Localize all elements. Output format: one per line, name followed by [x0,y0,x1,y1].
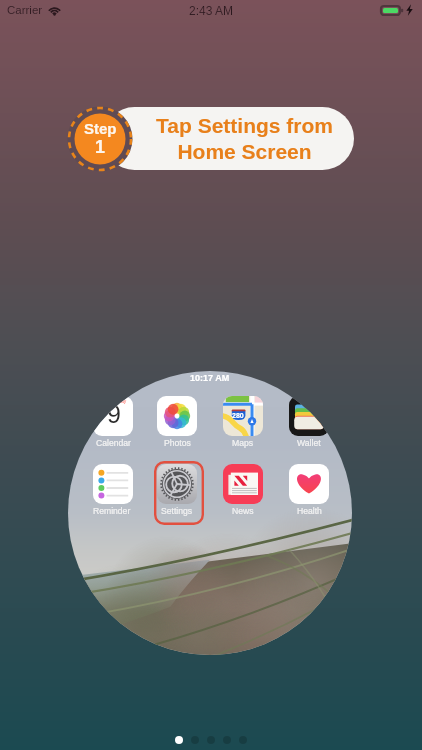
button[interactable]: Page 2 [191,736,199,744]
staticText: Settings [161,506,193,516]
button[interactable]: Page 4 [223,736,231,744]
staticText: 2:43 AM [189,4,234,17]
staticText: Reminders [93,506,133,516]
staticText: 10:17 AM [190,373,230,383]
staticText: Wallet [297,438,321,448]
button[interactable]: Page 5 [239,736,247,744]
button[interactable]: Step [67,106,133,172]
button[interactable]: Page 1 [175,736,183,744]
staticText: Wednesday [100,398,127,404]
staticText: Calendar [96,438,131,448]
button[interactable]: Reminders [93,464,133,516]
button[interactable]: Settings highlighted [154,461,204,525]
staticText: Step [84,120,117,137]
button[interactable]: Health [289,464,329,516]
button[interactable]: Wednesday [93,396,133,448]
staticText: 9 [107,400,121,428]
staticText: Photos [164,438,191,448]
button[interactable]: Settings [157,464,197,516]
staticText: 280 [232,412,244,420]
button[interactable]: Photos [157,396,197,448]
staticText: News [232,506,254,516]
staticText: Tap Settings from Home Screen [156,114,333,164]
button[interactable]: 280 [223,396,263,448]
staticText: Health [297,506,322,516]
button[interactable]: Page 3 [207,736,215,744]
staticText: Carrier [7,4,43,17]
staticText: 1 [95,137,106,157]
button[interactable]: News [223,464,263,516]
button[interactable]: Tap Settings from Home Screen [103,107,354,170]
staticText: Maps [232,438,254,448]
button[interactable]: Wallet [289,396,329,448]
